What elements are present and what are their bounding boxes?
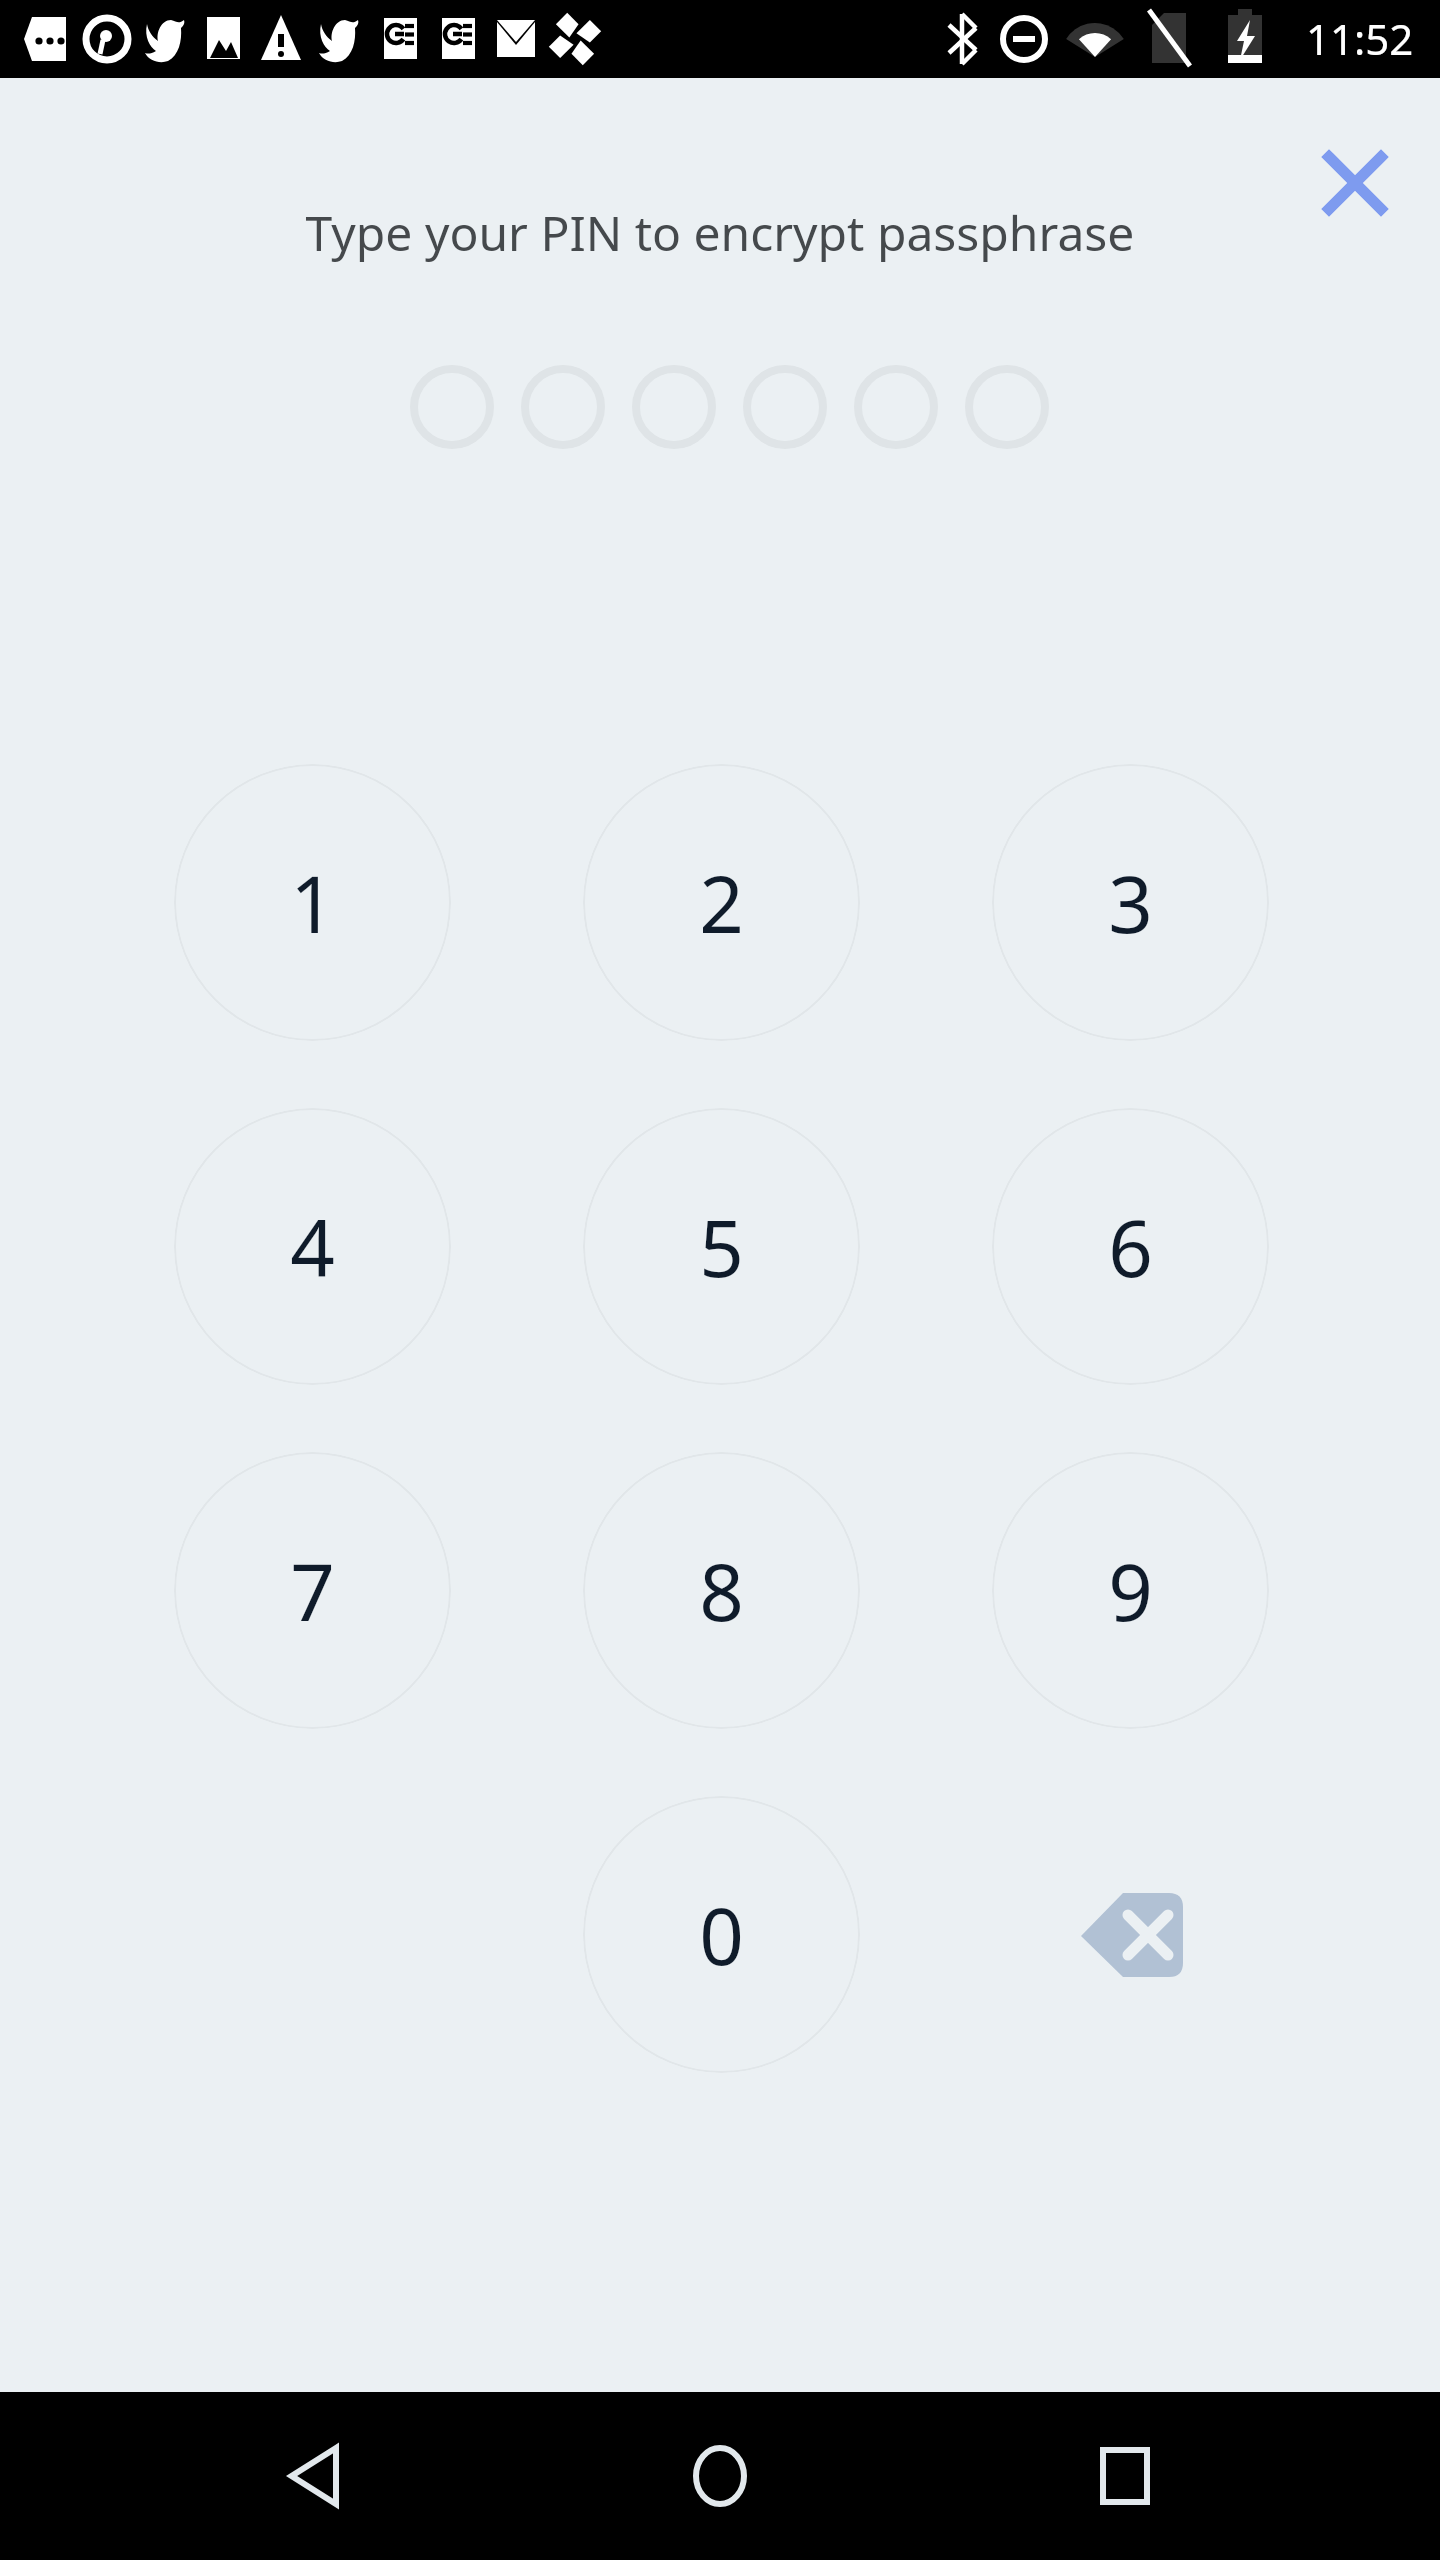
button[interactable]: 9 (992, 1452, 1269, 1729)
staticText: 2 (699, 850, 744, 956)
button[interactable]: Recent apps (1045, 2396, 1205, 2556)
button[interactable]: 2 (583, 764, 860, 1041)
button[interactable]: 6 (992, 1108, 1269, 1385)
staticText: 5 (699, 1194, 744, 1300)
button[interactable]: 5 (583, 1108, 860, 1385)
staticText: 3 (1108, 850, 1153, 956)
button[interactable]: Backspace (992, 1796, 1269, 2073)
button[interactable]: 4 (174, 1108, 451, 1385)
button[interactable]: Close (1300, 128, 1410, 238)
staticText: 7 (290, 1538, 335, 1644)
staticText: 6 (1108, 1194, 1153, 1300)
staticText: 8 (699, 1538, 744, 1644)
staticText: 11:52 (1306, 10, 1414, 67)
staticText: 4 (290, 1194, 335, 1300)
button[interactable]: 7 (174, 1452, 451, 1729)
staticText: 9 (1108, 1538, 1153, 1644)
button[interactable]: Back (238, 2396, 398, 2556)
button[interactable]: 0 (583, 1796, 860, 2073)
button[interactable]: 3 (992, 764, 1269, 1041)
staticText: Type your PIN to encrypt passphrase (0, 200, 1440, 265)
button[interactable]: 1 (174, 764, 451, 1041)
button[interactable]: Home (640, 2396, 800, 2556)
staticText: 0 (699, 1882, 744, 1988)
button[interactable]: 8 (583, 1452, 860, 1729)
staticText: 1 (290, 850, 335, 956)
